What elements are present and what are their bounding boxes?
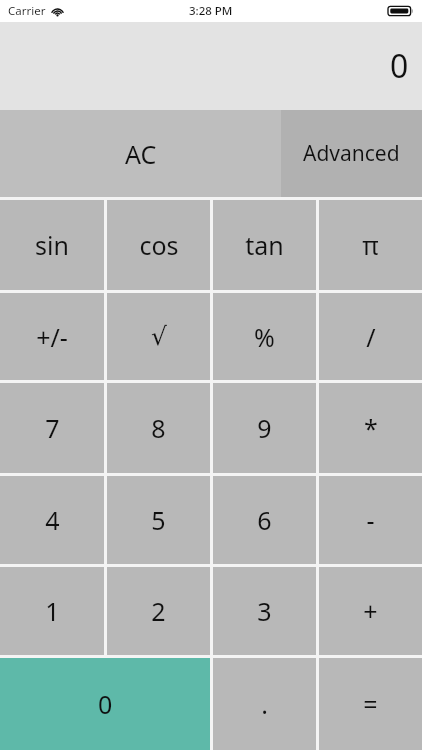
staticText: Advanced bbox=[303, 139, 400, 168]
staticText: / bbox=[366, 320, 376, 354]
button[interactable]: * bbox=[319, 383, 422, 473]
button[interactable]: 7 bbox=[0, 383, 104, 473]
button[interactable]: / bbox=[319, 293, 422, 380]
button[interactable]: - bbox=[319, 476, 422, 564]
staticText: 2 bbox=[151, 594, 166, 628]
button[interactable]: tan bbox=[213, 200, 316, 290]
button[interactable]: . bbox=[213, 658, 316, 750]
button[interactable]: 9 bbox=[213, 383, 316, 473]
staticText: cos bbox=[139, 228, 179, 262]
button[interactable]: 4 bbox=[0, 476, 104, 564]
button[interactable]: Advanced bbox=[281, 110, 422, 197]
staticText: = bbox=[363, 687, 378, 721]
button[interactable]: % bbox=[213, 293, 316, 380]
button[interactable]: 1 bbox=[0, 567, 104, 655]
staticText: 6 bbox=[257, 503, 272, 537]
staticText: * bbox=[364, 411, 378, 445]
button[interactable]: sin bbox=[0, 200, 104, 290]
staticText: 3 bbox=[257, 594, 272, 628]
staticText: 0 bbox=[98, 687, 113, 721]
staticText: 3:28 PM bbox=[189, 3, 233, 19]
button[interactable]: AC bbox=[0, 110, 281, 197]
staticText: + bbox=[363, 594, 378, 628]
button[interactable]: 3 bbox=[213, 567, 316, 655]
button[interactable]: cos bbox=[107, 200, 210, 290]
staticText: 0 bbox=[390, 44, 409, 88]
staticText: π bbox=[362, 228, 379, 262]
staticText: % bbox=[254, 320, 275, 354]
staticText: - bbox=[366, 503, 375, 537]
staticText: AC bbox=[125, 137, 157, 171]
button[interactable]: 2 bbox=[107, 567, 210, 655]
staticText: 1 bbox=[45, 594, 60, 628]
staticText: √ bbox=[151, 322, 167, 351]
button[interactable]: π bbox=[319, 200, 422, 290]
staticText: 7 bbox=[45, 411, 60, 445]
button[interactable]: +/- bbox=[0, 293, 104, 380]
staticText: 8 bbox=[151, 411, 166, 445]
button[interactable]: + bbox=[319, 567, 422, 655]
button[interactable]: 0 bbox=[0, 658, 210, 750]
button[interactable]: 8 bbox=[107, 383, 210, 473]
staticText: +/- bbox=[36, 320, 68, 354]
staticText: 9 bbox=[257, 411, 272, 445]
staticText: Carrier bbox=[8, 3, 46, 19]
staticText: tan bbox=[245, 228, 284, 262]
staticText: 4 bbox=[45, 503, 60, 537]
button[interactable]: 5 bbox=[107, 476, 210, 564]
staticText: . bbox=[261, 687, 268, 721]
button[interactable]: 6 bbox=[213, 476, 316, 564]
staticText: sin bbox=[35, 228, 69, 262]
button[interactable]: = bbox=[319, 658, 422, 750]
button[interactable]: √ bbox=[107, 293, 210, 380]
staticText: 5 bbox=[151, 503, 166, 537]
